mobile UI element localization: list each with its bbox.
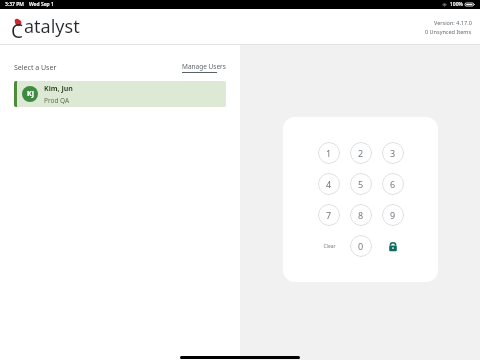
staticText: 4 bbox=[326, 178, 332, 190]
button[interactable]: 4 bbox=[318, 173, 340, 195]
button[interactable]: 8 bbox=[350, 204, 372, 226]
button[interactable]: Unlock bbox=[382, 235, 404, 257]
staticText: atalyst bbox=[24, 14, 80, 39]
staticText: 9 bbox=[390, 209, 396, 221]
button[interactable]: Clear bbox=[318, 235, 340, 257]
staticText: 0 bbox=[358, 240, 364, 252]
button[interactable]: 7 bbox=[318, 204, 340, 226]
button[interactable]: 3 bbox=[382, 142, 404, 164]
button[interactable]: 2 bbox=[350, 142, 372, 164]
staticText: 5 bbox=[358, 178, 364, 190]
staticText: Prod QA bbox=[44, 96, 70, 105]
staticText: Select a User bbox=[14, 63, 57, 73]
button[interactable]: 5 bbox=[350, 173, 372, 195]
staticText: 7 bbox=[326, 209, 332, 221]
staticText: 3 bbox=[390, 147, 396, 159]
staticText: 0 Unsynced Items bbox=[425, 28, 472, 35]
staticText: Clear bbox=[323, 243, 336, 250]
staticText: Manage Users bbox=[182, 62, 226, 71]
staticText: 1 bbox=[326, 147, 332, 159]
button[interactable]: 1 bbox=[318, 142, 340, 164]
button[interactable]: Manage Users bbox=[182, 62, 226, 73]
staticText: 8 bbox=[358, 209, 364, 221]
staticText: 3:37 PM bbox=[5, 1, 24, 8]
staticText: Version: 4.17.0 bbox=[434, 19, 472, 26]
button[interactable]: 0 bbox=[350, 235, 372, 257]
button[interactable]: 6 bbox=[382, 173, 404, 195]
staticText: 100% bbox=[450, 1, 463, 8]
staticText: 2 bbox=[358, 147, 364, 159]
button[interactable]: 9 bbox=[382, 204, 404, 226]
staticText: C bbox=[11, 18, 24, 40]
staticText: Kim, Jun bbox=[44, 84, 73, 94]
staticText: 6 bbox=[390, 178, 396, 190]
staticText: Wed Sep 1 bbox=[29, 1, 54, 8]
button[interactable]: KJ bbox=[14, 81, 226, 107]
staticText: KJ bbox=[27, 89, 34, 99]
